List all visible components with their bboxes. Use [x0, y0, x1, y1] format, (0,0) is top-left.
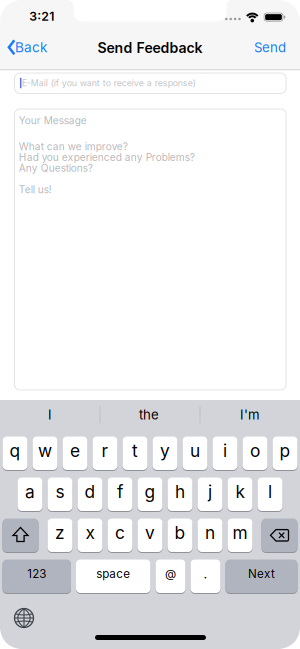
staticText: Next: [248, 567, 275, 581]
staticText: w: [38, 440, 52, 461]
staticText: a: [25, 481, 35, 502]
staticText: j: [208, 481, 212, 502]
button[interactable]: the: [100, 400, 198, 429]
button[interactable]: .: [190, 559, 220, 594]
button[interactable]: [0, 0, 300, 649]
staticText: k: [235, 481, 244, 502]
staticText: y: [160, 440, 170, 461]
staticText: f: [117, 481, 123, 502]
staticText: Tell us!: [19, 183, 52, 196]
button[interactable]: f: [107, 477, 132, 512]
button[interactable]: E-Mail (if you want to receive a respons…: [14, 73, 286, 93]
button[interactable]: r: [92, 436, 117, 471]
button[interactable]: j: [197, 477, 222, 512]
button[interactable]: b: [167, 518, 192, 553]
staticText: Send Feedback: [97, 39, 202, 56]
button[interactable]: k: [227, 477, 252, 512]
button[interactable]: q: [2, 436, 27, 471]
staticText: I'm: [240, 407, 260, 423]
staticText: I: [48, 407, 52, 423]
staticText: x: [85, 522, 94, 543]
button[interactable]: p: [272, 436, 297, 471]
staticText: E-Mail (if you want to receive a respons…: [22, 78, 196, 88]
button[interactable]: [2, 518, 38, 553]
staticText: h: [175, 481, 185, 502]
staticText: Had you experienced any Problems?: [19, 151, 195, 163]
staticText: Back: [15, 39, 47, 56]
button[interactable]: v: [137, 518, 162, 553]
button[interactable]: Send: [242, 35, 286, 60]
staticText: l: [268, 481, 272, 502]
button[interactable]: Back: [3, 35, 59, 60]
button[interactable]: y: [152, 436, 177, 471]
button[interactable]: l: [257, 477, 282, 512]
button[interactable]: Your Message: [0, 0, 300, 649]
staticText: b: [174, 522, 185, 543]
staticText: Any Questions?: [19, 162, 93, 174]
button[interactable]: [261, 518, 297, 553]
staticText: d: [84, 481, 95, 502]
button[interactable]: w: [32, 436, 57, 471]
button[interactable]: a: [17, 477, 42, 512]
button[interactable]: x: [77, 518, 102, 553]
staticText: p: [279, 440, 290, 461]
button[interactable]: 123: [2, 559, 71, 594]
button[interactable]: i: [212, 436, 237, 471]
staticText: s: [55, 481, 64, 502]
button[interactable]: z: [47, 518, 72, 553]
staticText: What can we improve?: [19, 140, 128, 153]
button[interactable]: n: [197, 518, 222, 553]
button[interactable]: I'm: [201, 400, 299, 429]
button[interactable]: o: [242, 436, 267, 471]
button[interactable]: g: [137, 477, 162, 512]
staticText: the: [139, 407, 159, 423]
button[interactable]: s: [47, 477, 72, 512]
staticText: i: [223, 440, 227, 461]
staticText: c: [115, 522, 125, 543]
button[interactable]: Next: [225, 559, 297, 594]
staticText: space: [96, 567, 130, 581]
staticText: r: [101, 440, 108, 461]
staticText: n: [205, 522, 215, 543]
staticText: u: [190, 440, 200, 461]
staticText: o: [250, 440, 260, 461]
button[interactable]: m: [227, 518, 252, 553]
button[interactable]: e: [62, 436, 87, 471]
button[interactable]: h: [167, 477, 192, 512]
staticText: Send: [254, 39, 286, 55]
staticText: v: [145, 522, 155, 543]
staticText: z: [55, 522, 65, 543]
button[interactable]: d: [77, 477, 102, 512]
staticText: 3:21: [29, 9, 54, 24]
staticText: Your Message: [19, 114, 87, 127]
staticText: q: [9, 440, 20, 461]
staticText: e: [70, 440, 80, 461]
staticText: @: [165, 567, 176, 581]
staticText: g: [144, 481, 155, 502]
button[interactable]: u: [182, 436, 207, 471]
staticText: 123: [27, 567, 46, 581]
button[interactable]: I: [1, 400, 99, 429]
button[interactable]: c: [107, 518, 132, 553]
staticText: .: [203, 566, 207, 582]
staticText: m: [232, 522, 247, 543]
button[interactable]: t: [122, 436, 147, 471]
button[interactable]: space: [76, 559, 150, 594]
button[interactable]: @: [155, 559, 185, 594]
staticText: t: [132, 440, 138, 461]
